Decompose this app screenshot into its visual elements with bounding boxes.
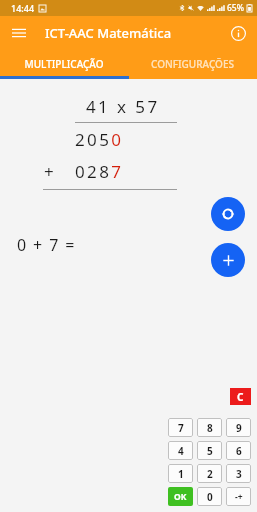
staticText: 3 [236,467,242,481]
staticText: ICT-AAC Matemática [45,24,172,42]
staticText: 41 x 57 [86,95,160,118]
staticText: 7 [178,421,184,435]
button[interactable]: CONFIGURAÇÕES [128,49,257,79]
button[interactable]: 8 [197,418,222,437]
button[interactable]: About this app [226,21,250,45]
staticText: 65% [227,2,244,14]
button[interactable]: 6 [226,441,251,460]
button[interactable]: 5 [197,441,222,460]
button[interactable]: 3 [226,464,251,483]
staticText: 2 [207,467,213,481]
staticText: 0 [207,490,213,504]
button[interactable]: 7 [168,418,193,437]
staticText: 9 [236,421,242,435]
staticText: 14:44 [11,2,35,14]
staticText: MULTIPLICAÇÃO [24,57,104,71]
staticText: 1 [178,467,184,481]
button[interactable]: Open navigation menu [7,21,31,45]
button[interactable]: -+ [226,487,251,506]
staticText: 4 [178,444,184,458]
button[interactable]: 4 [168,441,193,460]
staticText: 6 [236,444,242,458]
button[interactable]: Add [211,243,245,277]
staticText: 0 + 7 = [17,234,76,256]
button[interactable]: Generate new problem [211,197,245,231]
staticText: 5 [207,444,213,458]
button[interactable]: OK [168,487,193,506]
button[interactable]: 1 [168,464,193,483]
button[interactable]: MULTIPLICAÇÃO [0,49,128,79]
staticText: -+ [235,491,243,503]
staticText: 0287 [75,160,124,183]
staticText: OK [174,491,187,503]
staticText: C [237,390,244,404]
staticText: CONFIGURAÇÕES [151,57,234,71]
button[interactable]: 0 [197,487,222,506]
button[interactable]: 2 [197,464,222,483]
staticText: + [44,160,57,183]
staticText: 2050 [75,128,124,151]
staticText: 8 [207,421,213,435]
button[interactable]: 9 [226,418,251,437]
button[interactable]: C [230,388,251,405]
